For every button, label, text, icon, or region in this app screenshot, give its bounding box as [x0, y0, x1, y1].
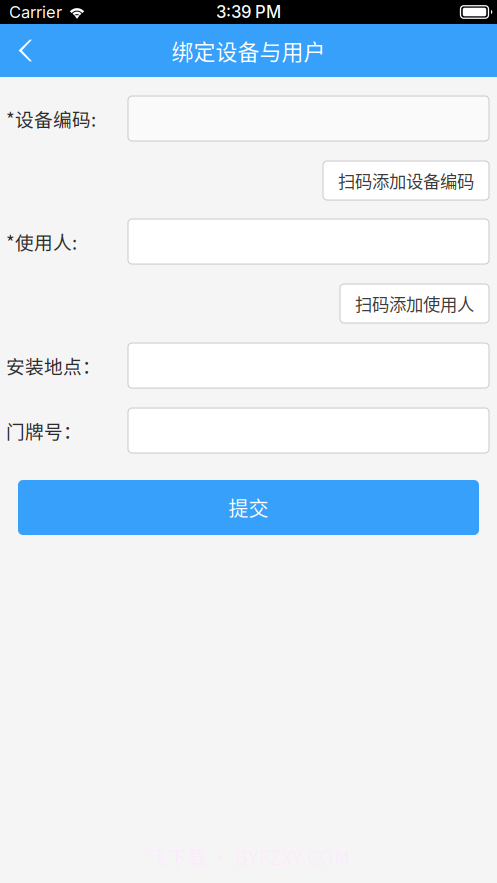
button[interactable]: 提交: [18, 480, 479, 535]
button[interactable]: Back: [0, 24, 46, 77]
staticText: *设备编码:: [6, 105, 96, 132]
staticText: 提交: [228, 493, 268, 522]
button[interactable]: 门牌号：: [128, 408, 489, 453]
button[interactable]: 扫码添加设备编码: [323, 161, 489, 200]
button[interactable]: 安装地点：: [128, 343, 489, 388]
staticText: 安装地点：: [6, 352, 101, 379]
button[interactable]: *使用人:: [128, 219, 489, 264]
staticText: 3:39 PM: [216, 2, 281, 22]
staticText: 扫码添加设备编码: [338, 168, 474, 193]
button[interactable]: *设备编码:: [128, 96, 489, 141]
staticText: 门牌号：: [6, 417, 82, 444]
button[interactable]: 扫码添加使用人: [340, 284, 489, 323]
staticText: 绑定设备与用户: [171, 35, 325, 66]
staticText: Carrier: [9, 2, 62, 22]
staticText: *使用人:: [6, 228, 77, 255]
staticText: 扫码添加使用人: [355, 291, 474, 316]
